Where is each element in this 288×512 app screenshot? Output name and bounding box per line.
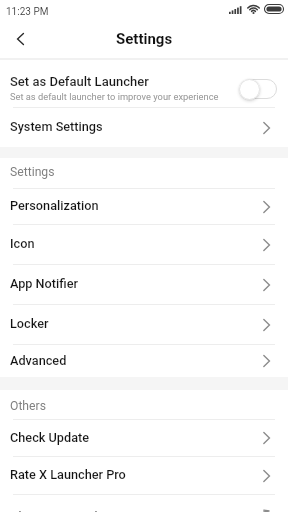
staticText: About X Launcher Pro (10, 509, 137, 512)
button[interactable]: Advanced (0, 345, 288, 377)
button[interactable]: Check Update (0, 420, 288, 456)
staticText: Others (10, 399, 46, 413)
staticText: Check Update (10, 430, 90, 445)
staticText: Icon (10, 236, 35, 251)
button[interactable]: System Settings (0, 108, 288, 147)
button[interactable]: Set as Default Launcher (0, 60, 288, 107)
staticText: System Settings (10, 119, 103, 134)
button[interactable] (239, 78, 277, 100)
button[interactable]: Personalization (0, 189, 288, 224)
staticText: Personalization (10, 198, 99, 213)
staticText: App Notifier (10, 276, 78, 291)
staticText: Locker (10, 316, 49, 331)
button[interactable]: About X Launcher Pro (0, 495, 288, 512)
button[interactable] (8, 27, 32, 51)
button[interactable]: Locker (0, 305, 288, 344)
button[interactable]: App Notifier (0, 265, 288, 304)
staticText: 11:23 PM (6, 6, 49, 18)
staticText: Advanced (10, 353, 67, 368)
button[interactable]: Icon (0, 225, 288, 264)
staticText: Settings (116, 30, 173, 48)
staticText: Rate X Launcher Pro (10, 467, 126, 482)
staticText: Settings (10, 165, 55, 179)
button[interactable]: Rate X Launcher Pro (0, 457, 288, 494)
staticText: Set as Default Launcher (10, 74, 149, 89)
staticText: Set as default launcher to improve your … (10, 91, 219, 102)
